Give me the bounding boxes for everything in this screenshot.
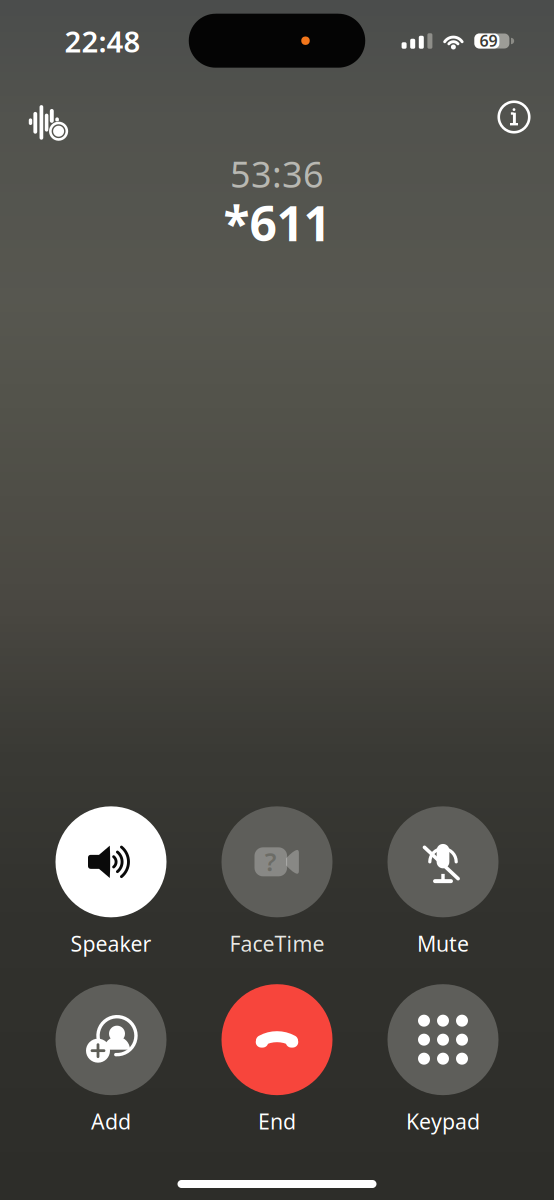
staticText: Speaker [70, 929, 151, 958]
button[interactable]: Add [28, 984, 194, 1135]
staticText: 22:48 [64, 21, 140, 60]
staticText: Keypad [406, 1107, 480, 1135]
staticText: 53:36 [230, 150, 324, 198]
button[interactable]: Call recording [0, 78, 78, 154]
staticText: FaceTime [229, 929, 324, 958]
button[interactable]: Keypad [360, 984, 526, 1135]
button[interactable]: Call info [483, 82, 554, 150]
staticText: End [258, 1107, 296, 1135]
staticText: Add [91, 1107, 131, 1135]
staticText: *611 [223, 191, 330, 254]
staticText: Mute [417, 929, 469, 958]
button[interactable]: End [194, 984, 360, 1135]
button[interactable]: Speaker [28, 806, 194, 958]
staticText: ? [265, 844, 277, 878]
staticText: 69 [479, 30, 497, 51]
button[interactable]: ? [194, 806, 360, 958]
button[interactable]: Mute [360, 806, 526, 958]
